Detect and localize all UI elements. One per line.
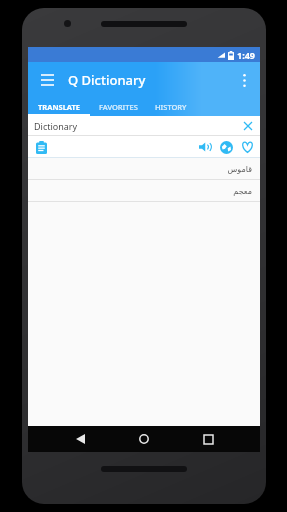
- staticText: HISTORY: [155, 102, 187, 112]
- button[interactable]: HISTORY: [146, 98, 196, 116]
- staticText: FAVORITES: [99, 102, 138, 112]
- button[interactable]: More options: [234, 70, 254, 90]
- button[interactable]: Add to favorites: [238, 138, 256, 156]
- button[interactable]: Open navigation menu: [36, 69, 58, 91]
- button[interactable]: Paste from clipboard: [32, 138, 50, 156]
- button[interactable]: TRANSLATE: [28, 98, 90, 116]
- button[interactable]: معجم: [28, 180, 260, 202]
- button[interactable]: Recent apps: [196, 427, 220, 451]
- staticText: قاموس: [227, 165, 252, 174]
- staticText: Q Dictionary: [68, 71, 146, 89]
- button[interactable]: Clear search: [241, 119, 255, 133]
- button[interactable]: Speak: [196, 138, 214, 156]
- button[interactable]: قاموس: [28, 158, 260, 180]
- button[interactable]: Home: [132, 427, 156, 451]
- button[interactable]: Translate language: [217, 138, 235, 156]
- staticText: TRANSLATE: [38, 102, 81, 112]
- staticText: معجم: [233, 187, 252, 196]
- staticText: 1:49: [237, 49, 255, 61]
- staticText: Dictionary: [34, 120, 78, 132]
- button[interactable]: Dictionary: [28, 116, 260, 136]
- button[interactable]: Back: [68, 427, 92, 451]
- button[interactable]: FAVORITES: [90, 98, 146, 116]
